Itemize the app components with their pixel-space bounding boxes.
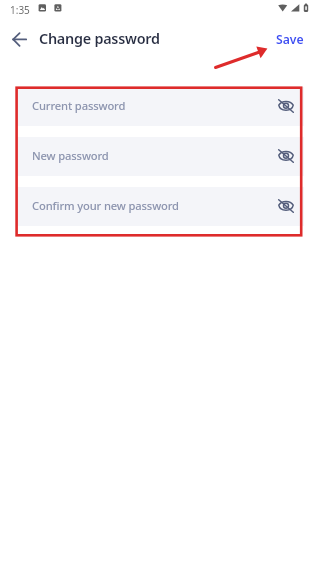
staticText: New password (32, 148, 274, 163)
staticText: Confirm your new password (32, 198, 274, 213)
button[interactable]: Confirm your new password (16, 187, 304, 226)
staticText: Current password (32, 98, 274, 113)
button[interactable]: New password (16, 137, 304, 176)
button[interactable]: Current password (16, 87, 304, 126)
staticText: Save (276, 31, 304, 48)
staticText: Change password (39, 29, 160, 49)
button[interactable]: Toggle password visibility (274, 144, 298, 168)
button[interactable]: Save (270, 25, 310, 54)
button[interactable]: Toggle password visibility (274, 94, 298, 118)
staticText: 1:35 (10, 3, 30, 17)
button[interactable]: Back (6, 24, 34, 52)
button[interactable]: Toggle password visibility (274, 194, 298, 218)
